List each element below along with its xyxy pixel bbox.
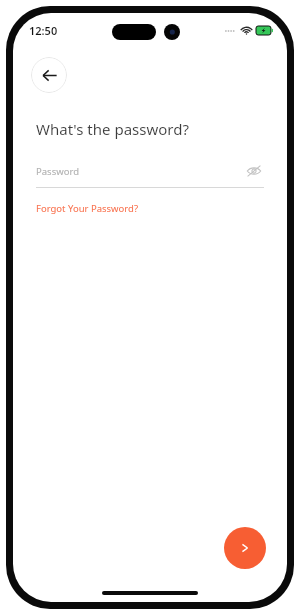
button[interactable]: Show password — [244, 161, 264, 181]
button[interactable]: Password — [36, 161, 264, 188]
staticText: Forgot Your Password? — [36, 202, 139, 215]
staticText: What's the password? — [36, 119, 189, 139]
button[interactable]: Forgot Your Password? — [36, 202, 139, 215]
staticText: Password — [36, 165, 244, 178]
staticText: 12:50 — [29, 23, 58, 38]
button[interactable]: Back — [31, 57, 67, 93]
button[interactable]: Continue — [224, 527, 266, 569]
